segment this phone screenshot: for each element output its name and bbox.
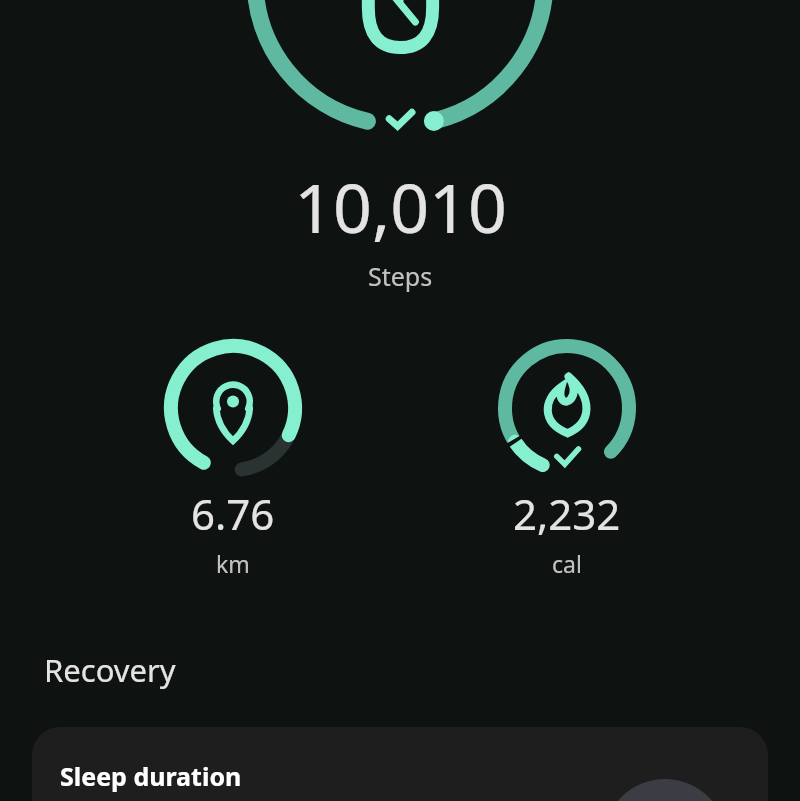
button[interactable]: Steps progress [0,0,800,150]
button[interactable]: 10,010 [0,160,800,293]
staticText: km [216,548,250,579]
staticText: 10,010 [294,160,507,253]
button[interactable]: Distance [133,333,333,579]
staticText: Recovery [44,649,176,691]
staticText: Sleep duration [60,759,242,793]
staticText: 2,232 [513,485,621,542]
staticText: 6.76 [191,485,275,542]
button[interactable]: Sleep duration [32,727,768,801]
staticText: cal [552,548,582,579]
button[interactable]: Calories [467,333,667,579]
staticText: Steps [368,259,433,293]
